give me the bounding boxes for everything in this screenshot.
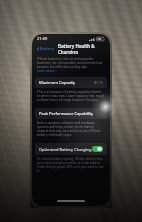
button[interactable]: Battery [35,45,55,52]
staticText: Built-in dynamic software and hardware s… [37,121,105,137]
button[interactable]: Peak Performance Capability [35,108,107,119]
staticText: To reduce battery ageing, iPhone learns … [37,157,105,173]
staticText: This is a measure of battery capacity re… [37,90,105,102]
staticText: Optimized Battery Charging [39,147,92,152]
staticText: iPhone batteries, like all rechargeable … [37,57,105,69]
staticText: Maximum Capacity [39,80,75,85]
button[interactable]: Optimized Battery Charging [35,143,107,155]
staticText: Peak Performance Capability [39,111,94,116]
staticText: 21:09 [37,36,48,41]
button[interactable]: Learn more... [37,69,57,73]
button[interactable]: Optimized Battery Charging toggle [92,146,103,152]
button[interactable]: Maximum Capacity [35,77,107,88]
staticText: 87 % [94,80,103,85]
staticText: Battery Health & Charging [58,43,106,54]
staticText: Battery [40,46,54,51]
